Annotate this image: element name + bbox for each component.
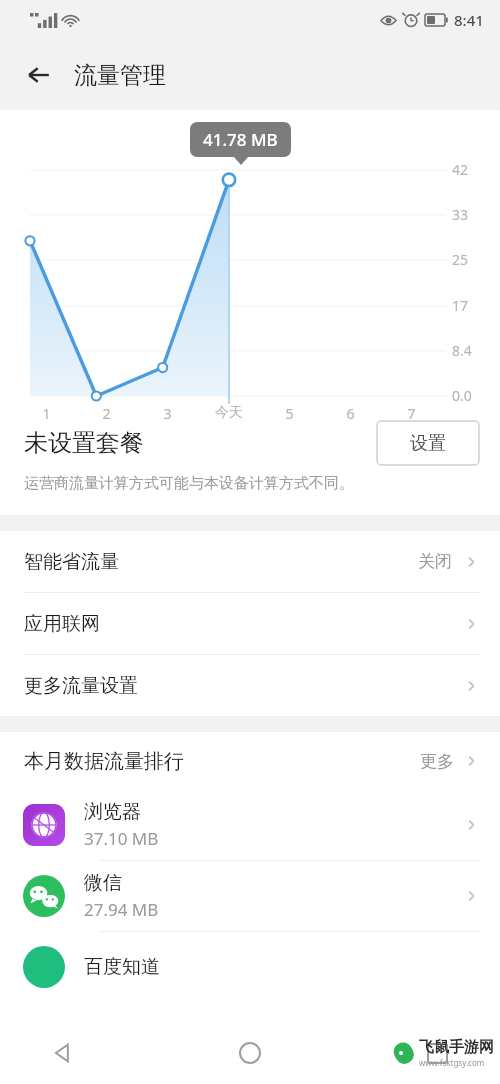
button[interactable]: Recent apps <box>410 1026 464 1080</box>
button[interactable]: Back <box>36 1026 90 1080</box>
staticText: 今天 <box>215 404 243 422</box>
staticText: 1 <box>42 404 51 423</box>
staticText: 5 <box>285 404 294 423</box>
staticText: 8:41 <box>454 10 484 30</box>
staticText: www.fsktgsy.com <box>419 1057 485 1068</box>
staticText: 设置 <box>410 432 446 455</box>
staticText: 8.4 <box>452 341 472 360</box>
button[interactable]: 微信 <box>0 861 500 932</box>
staticText: 2 <box>102 404 111 423</box>
staticText: 运营商流量计算方式可能与本设备计算方式不同。 <box>24 474 354 493</box>
staticText: 25 <box>452 250 469 269</box>
staticText: 27.94 MB <box>84 898 159 921</box>
staticText: 关闭 <box>418 551 452 572</box>
staticText: 17 <box>452 296 469 315</box>
button[interactable]: 设置 <box>376 420 480 466</box>
button[interactable]: 浏览器 <box>0 790 500 861</box>
staticText: 流量管理 <box>74 61 166 90</box>
staticText: 百度知道 <box>84 955 160 979</box>
button[interactable]: Back <box>14 50 64 100</box>
staticText: 未设置套餐 <box>24 428 376 458</box>
button[interactable]: 智能省流量 <box>0 531 500 593</box>
button[interactable]: 更多流量设置 <box>0 655 500 716</box>
button[interactable]: 本月数据流量排行 <box>24 732 480 790</box>
staticText: 更多 <box>420 751 454 772</box>
staticText: 更多流量设置 <box>24 674 462 698</box>
staticText: 微信 <box>84 871 122 895</box>
staticText: 0.0 <box>452 386 472 405</box>
staticText: 41.78 MB <box>203 128 278 151</box>
staticText: 37.10 MB <box>84 827 159 850</box>
staticText: 6 <box>346 404 355 423</box>
button[interactable]: 百度知道 <box>0 932 500 1002</box>
staticText: 3 <box>163 404 172 423</box>
staticText: 本月数据流量排行 <box>24 749 420 774</box>
staticText: 飞鼠手游网 <box>419 1038 494 1057</box>
button[interactable]: Home <box>223 1026 277 1080</box>
button[interactable]: 应用联网 <box>0 593 500 655</box>
staticText: 42 <box>452 160 469 179</box>
staticText: 浏览器 <box>84 800 141 824</box>
staticText: 应用联网 <box>24 612 462 636</box>
staticText: 33 <box>452 205 469 224</box>
staticText: 7 <box>407 404 416 423</box>
staticText: 智能省流量 <box>24 550 418 574</box>
